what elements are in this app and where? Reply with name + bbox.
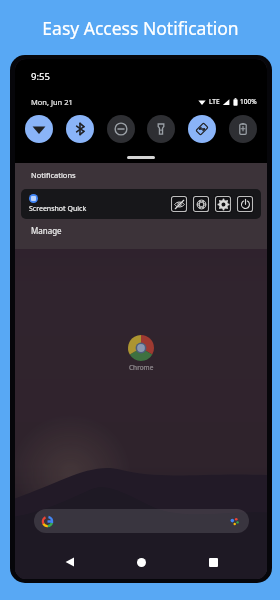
button[interactable]: Home	[124, 545, 158, 579]
staticText: LTE	[209, 97, 220, 106]
button[interactable]: Hide notification	[170, 195, 188, 213]
button[interactable]: Power	[236, 195, 254, 213]
staticText: 100%	[240, 97, 257, 106]
button[interactable]: Back	[53, 545, 87, 579]
staticText: Mon, Jun 21	[31, 97, 73, 107]
button[interactable]: Flashlight	[147, 115, 175, 143]
button[interactable]: Wi-Fi	[25, 115, 53, 143]
button[interactable]: Battery Saver	[229, 115, 257, 143]
staticText: Notifications	[31, 170, 76, 180]
staticText: Screenshot Quick	[29, 204, 87, 214]
button[interactable]: Chrome	[128, 335, 154, 372]
button[interactable]: Recents	[196, 545, 230, 579]
button[interactable]: Take screenshot	[192, 195, 210, 213]
staticText: 9:55	[31, 70, 50, 83]
staticText: Chrome	[129, 363, 154, 372]
staticText: Easy Access Notification	[42, 16, 239, 40]
button[interactable]: Search	[34, 509, 249, 533]
button[interactable]: Bluetooth	[66, 115, 94, 143]
button[interactable]: Manage	[31, 225, 62, 236]
button[interactable]: Settings	[214, 195, 232, 213]
button[interactable]: Do not disturb	[107, 115, 135, 143]
button[interactable]: Auto-rotate	[188, 115, 216, 143]
button[interactable]: Screenshot Quick	[21, 189, 261, 219]
